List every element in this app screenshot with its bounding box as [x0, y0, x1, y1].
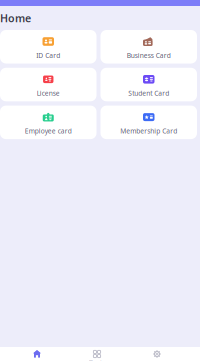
button[interactable]: License [0, 68, 96, 101]
button[interactable]: ID Card [0, 30, 96, 63]
button[interactable]: Student Card [100, 68, 197, 101]
staticText: Business Card [127, 51, 171, 60]
button[interactable]: Business Card [100, 30, 197, 63]
button[interactable]: Home [7, 350, 67, 361]
staticText: Home [0, 11, 31, 25]
staticText: Tools [89, 358, 105, 361]
staticText: License [37, 89, 60, 98]
staticText: Student Card [128, 89, 169, 98]
button[interactable]: Membership Card [100, 106, 197, 139]
button[interactable]: Tools [67, 350, 127, 361]
button[interactable]: Employee card [0, 106, 96, 139]
staticText: Employee card [25, 127, 72, 135]
staticText: ID Card [36, 51, 60, 60]
button[interactable]: Settings [127, 350, 187, 361]
staticText: Membership Card [120, 127, 177, 135]
